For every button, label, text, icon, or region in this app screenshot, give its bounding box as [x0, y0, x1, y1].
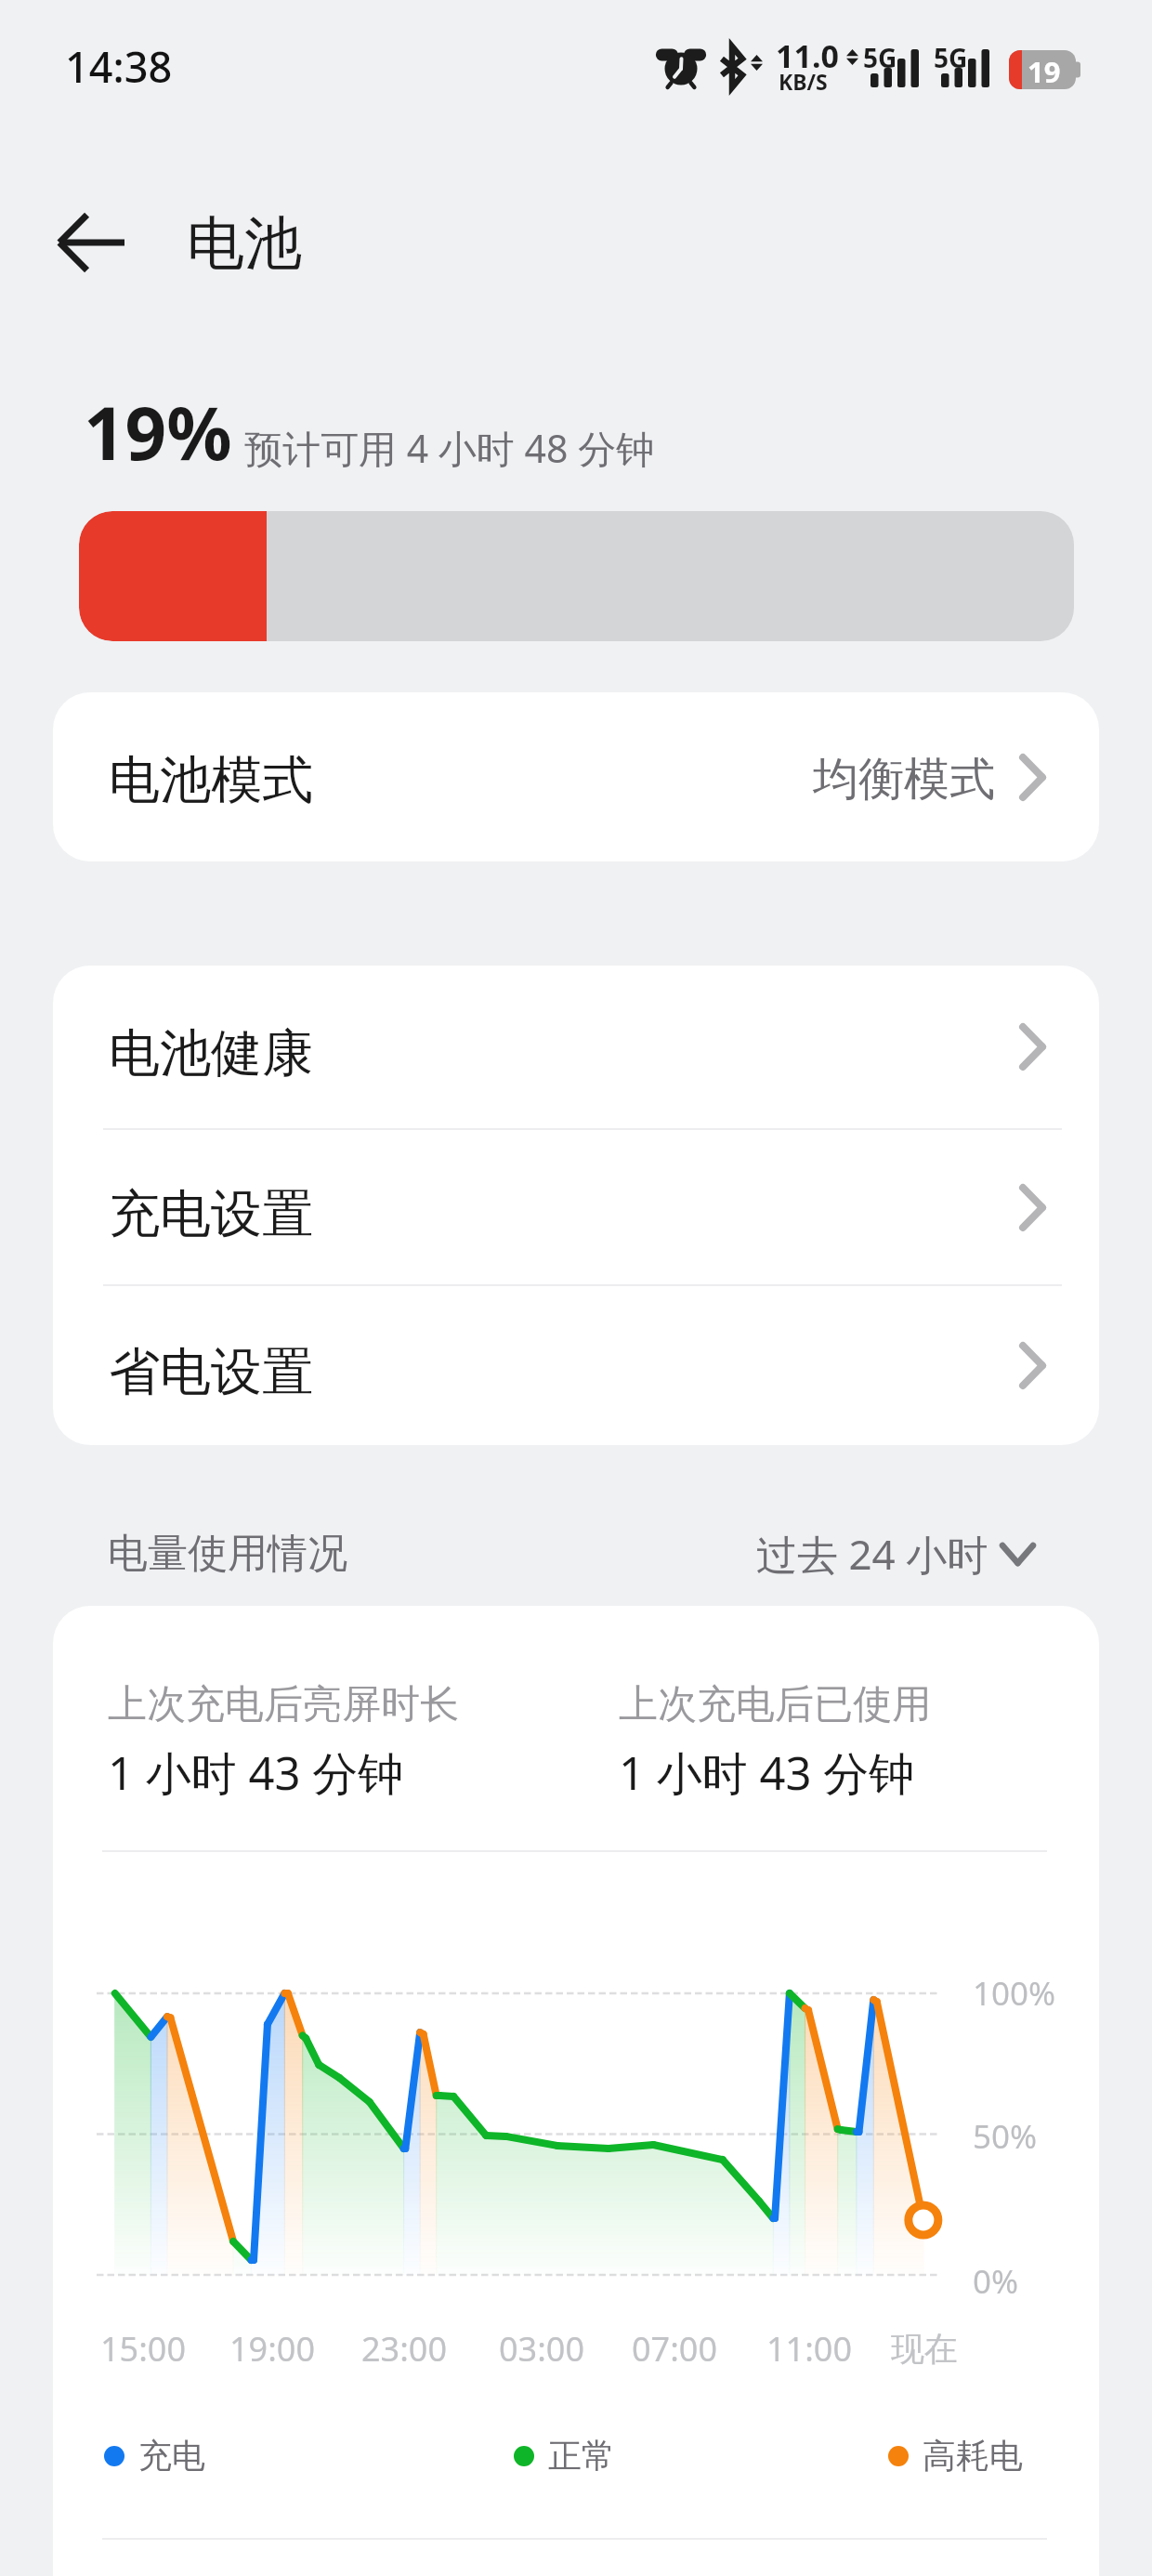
staticText: 1 小时 43 分钟 [619, 1741, 915, 1804]
staticText: 5G [934, 40, 968, 75]
staticText: 充电 [138, 2435, 205, 2477]
staticText: 19:00 [229, 2326, 316, 2372]
staticText: 100% [973, 1971, 1056, 2016]
button[interactable]: Back [25, 177, 157, 309]
staticText: 电池模式 [109, 748, 313, 812]
button[interactable]: 电量使用情况 [0, 1514, 1152, 1590]
staticText: 07:00 [632, 2326, 718, 2372]
button[interactable]: 充电设置 [53, 1130, 1099, 1284]
staticText: 5G [863, 40, 897, 75]
staticText: 11:00 [766, 2326, 853, 2372]
button[interactable]: 电池模式 [53, 692, 1099, 861]
staticText: 19% [84, 383, 232, 467]
staticText: 省电设置 [109, 1340, 313, 1404]
staticText: 23:00 [361, 2326, 448, 2372]
staticText: 03:00 [499, 2326, 585, 2372]
button[interactable]: 电池健康 [53, 966, 1099, 1128]
staticText: 电池 [187, 207, 302, 280]
staticText: 上次充电后已使用 [619, 1680, 931, 1729]
staticText: 均衡模式 [813, 751, 995, 808]
staticText: 15:00 [100, 2326, 187, 2372]
staticText: 11.0 [776, 34, 839, 77]
staticText: 充电设置 [109, 1182, 313, 1246]
staticText: KB/S [779, 67, 828, 96]
staticText: 电池健康 [109, 1021, 313, 1085]
staticText: 电量使用情况 [108, 1529, 347, 1579]
staticText: 14:38 [65, 38, 173, 95]
staticText: 19 [1028, 52, 1061, 91]
staticText: 现在 [891, 2328, 958, 2370]
button[interactable]: 省电设置 [53, 1286, 1099, 1445]
staticText: 50% [973, 2114, 1038, 2159]
staticText: 正常 [548, 2435, 615, 2477]
staticText: 上次充电后亮屏时长 [108, 1680, 459, 1729]
staticText: 高耗电 [923, 2435, 1023, 2477]
staticText: 预计可用 4 小时 48 分钟 [244, 422, 654, 474]
staticText: 过去 24 小时 [756, 1526, 988, 1582]
staticText: 1 小时 43 分钟 [108, 1741, 404, 1804]
staticText: 0% [973, 2259, 1019, 2304]
